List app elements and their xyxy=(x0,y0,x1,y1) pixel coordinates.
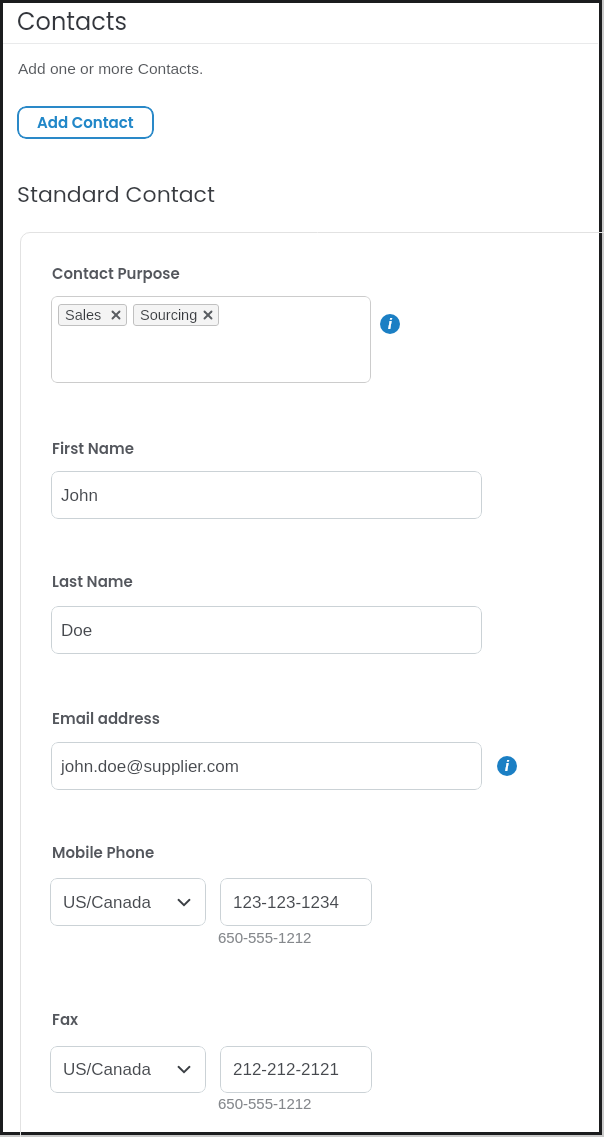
staticText: Add one or more Contacts. xyxy=(18,60,204,77)
staticText: Email address xyxy=(52,708,160,729)
button[interactable]: Sales xyxy=(58,304,127,326)
staticText: Doe xyxy=(61,621,93,640)
button[interactable]: John xyxy=(51,471,482,519)
staticText: Last Name xyxy=(52,571,133,592)
staticText: i xyxy=(505,758,509,774)
button[interactable]: Sourcing xyxy=(133,304,219,326)
button[interactable]: john.doe@supplier.com xyxy=(51,742,482,790)
button[interactable]: i xyxy=(380,314,400,334)
button[interactable]: US/Canada xyxy=(50,878,206,926)
staticText: Add Contact xyxy=(37,112,134,133)
staticText: 650-555-1212 xyxy=(218,929,312,946)
staticText: i xyxy=(388,316,392,332)
button[interactable] xyxy=(51,296,371,383)
staticText: Standard Contact xyxy=(17,179,215,210)
staticText: Contacts xyxy=(17,5,128,39)
button[interactable]: 123-123-1234 xyxy=(220,878,372,926)
staticText: 650-555-1212 xyxy=(218,1095,312,1112)
staticText: john.doe@supplier.com xyxy=(61,757,239,776)
staticText: Sales xyxy=(65,307,102,323)
button[interactable]: 212-212-2121 xyxy=(220,1046,372,1093)
button[interactable]: Add Contact xyxy=(17,106,154,139)
button[interactable]: i xyxy=(497,756,517,776)
staticText: US/Canada xyxy=(63,1060,151,1079)
button[interactable]: Doe xyxy=(51,606,482,654)
staticText: 212-212-2121 xyxy=(233,1060,339,1079)
button[interactable]: US/Canada xyxy=(50,1046,206,1093)
staticText: Sourcing xyxy=(140,307,198,323)
staticText: Mobile Phone xyxy=(52,842,155,863)
staticText: US/Canada xyxy=(63,893,151,912)
staticText: 123-123-1234 xyxy=(233,893,339,912)
staticText: Contact Purpose xyxy=(52,263,180,284)
staticText: John xyxy=(61,486,98,505)
staticText: First Name xyxy=(52,438,134,459)
staticText: Fax xyxy=(52,1009,79,1030)
